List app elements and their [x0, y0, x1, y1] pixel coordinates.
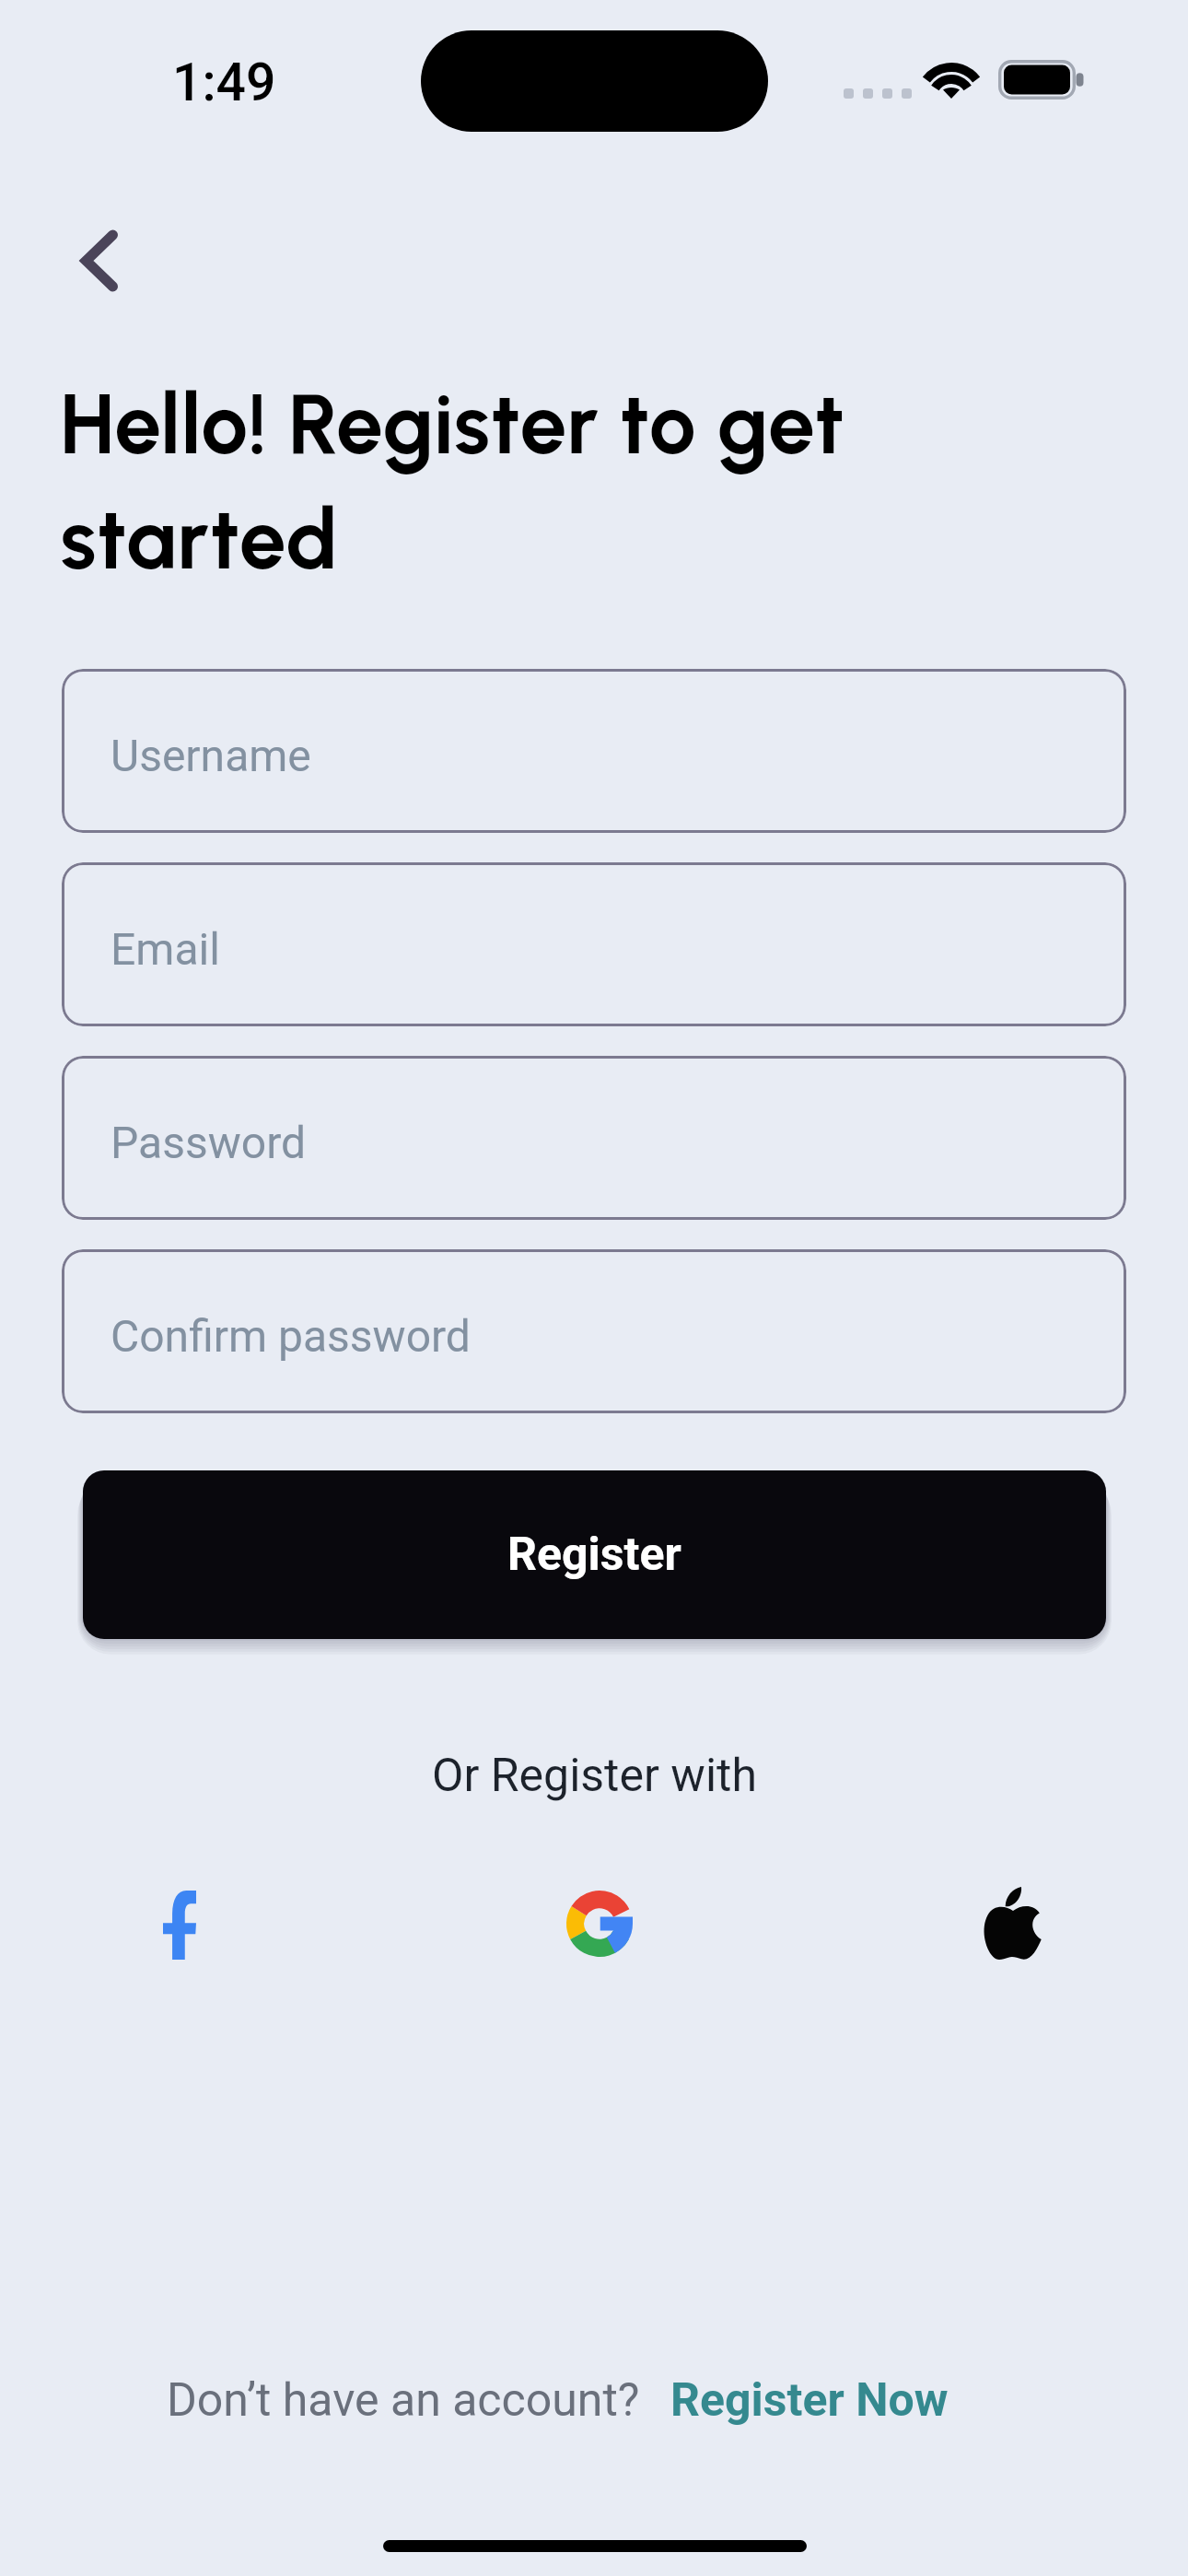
- staticText: started: [60, 489, 339, 590]
- staticText: Password: [111, 1117, 307, 1168]
- staticText: Register: [507, 1528, 681, 1582]
- staticText: Register Now: [670, 2373, 949, 2428]
- button[interactable]: Register Now: [670, 2373, 949, 2428]
- staticText: Or Register with: [432, 1749, 757, 1803]
- staticText: 1:49: [172, 52, 276, 113]
- button[interactable]: Register: [83, 1470, 1106, 1639]
- button[interactable]: Username: [62, 669, 1126, 833]
- button[interactable]: Sign up with Google: [566, 1891, 633, 1957]
- button[interactable]: Sign up with Apple: [984, 1887, 1042, 1960]
- button[interactable]: Back: [58, 219, 141, 302]
- staticText: Don’t have an account?: [167, 2373, 640, 2428]
- staticText: Hello! Register to get: [60, 374, 845, 474]
- button[interactable]: Confirm password: [62, 1249, 1126, 1413]
- staticText: Confirm password: [111, 1310, 471, 1362]
- staticText: Email: [111, 923, 220, 975]
- staticText: Username: [111, 730, 311, 781]
- button[interactable]: Password: [62, 1056, 1126, 1220]
- button[interactable]: Email: [62, 862, 1126, 1026]
- button[interactable]: Sign up with Facebook: [163, 1891, 196, 1960]
